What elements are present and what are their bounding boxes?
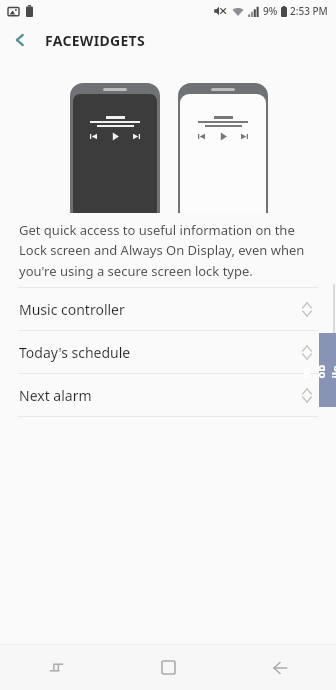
button[interactable]: Back: [0, 22, 40, 58]
button[interactable]: Today's schedule: [0, 331, 336, 373]
button[interactable]: Music controller: [0, 288, 336, 330]
staticText: Next alarm: [19, 386, 92, 405]
staticText: 9%: [263, 4, 278, 18]
staticText: FACEWIDGETS: [45, 31, 145, 50]
staticText: 2:53 PM: [290, 4, 328, 18]
button[interactable]: Next alarm: [0, 374, 336, 416]
staticText: Get quick access to useful information o…: [19, 221, 312, 280]
staticText: Music controller: [19, 300, 125, 319]
staticText: Today's schedule: [19, 343, 131, 362]
button[interactable]: Recents: [0, 645, 112, 690]
other: Reorder Next alarm: [296, 384, 318, 406]
button[interactable]: Home: [112, 645, 224, 690]
other: Reorder Today's schedule: [296, 341, 318, 363]
other: Reorder Music controller: [296, 298, 318, 320]
button[interactable]: Back: [224, 645, 336, 690]
staticText: mobile.ir: [297, 361, 336, 378]
